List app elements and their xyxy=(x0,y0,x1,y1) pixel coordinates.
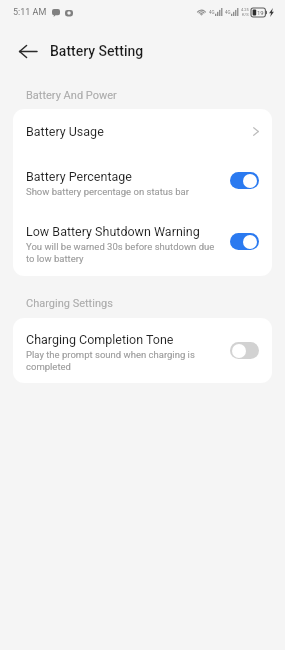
staticText: Charging Settings xyxy=(26,297,113,310)
staticText: You will be warned 30s before shutdown d… xyxy=(26,241,216,264)
staticText: 4.25 xyxy=(241,7,249,12)
staticText: 4G xyxy=(225,10,231,15)
button[interactable]: Back xyxy=(12,35,44,67)
button[interactable]: Switch on xyxy=(230,172,259,189)
staticText: Play the prompt sound when charging is c… xyxy=(26,349,216,372)
staticText: Show battery percentage on status bar xyxy=(26,186,189,197)
button[interactable]: Charging Completion Tone xyxy=(13,318,272,383)
button[interactable]: Low Battery Shutdown Warning xyxy=(13,207,272,276)
staticText: Battery Percentage xyxy=(26,169,132,184)
staticText: Low Battery Shutdown Warning xyxy=(26,224,200,239)
staticText: K/S xyxy=(242,12,249,17)
staticText: Charging Completion Tone xyxy=(26,332,174,347)
staticText: 5:11 AM xyxy=(13,7,47,18)
button[interactable]: Switch off xyxy=(230,342,259,359)
staticText: Battery Usage xyxy=(26,124,104,139)
staticText: Battery And Power xyxy=(26,89,117,102)
button[interactable]: Switch on xyxy=(230,233,259,250)
staticText: 19 xyxy=(257,9,264,16)
staticText: Battery Setting xyxy=(50,43,144,59)
button[interactable]: Battery Percentage xyxy=(13,153,272,207)
button[interactable]: Battery Usage xyxy=(13,109,272,153)
staticText: 4G xyxy=(209,10,215,15)
